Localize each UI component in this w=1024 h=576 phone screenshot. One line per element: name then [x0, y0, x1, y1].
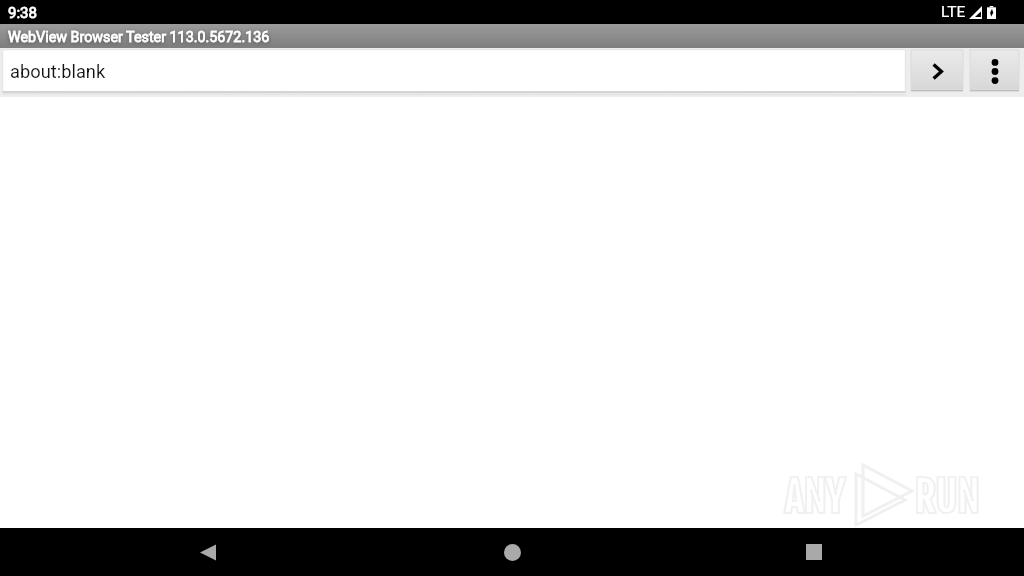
staticText: about:blank — [10, 61, 106, 82]
button[interactable]: Back — [184, 528, 232, 576]
button[interactable]: Home — [488, 528, 536, 576]
staticText: RUN — [914, 472, 979, 524]
button[interactable]: about:blank — [3, 49, 905, 92]
button[interactable]: More options — [970, 50, 1019, 92]
staticText: ANY — [784, 472, 845, 524]
button[interactable]: Recent apps — [790, 528, 838, 576]
staticText: WebView Browser Tester 113.0.5672.136 — [8, 29, 270, 46]
staticText: LTE — [941, 3, 966, 21]
staticText: 9:38 — [8, 4, 37, 22]
button[interactable]: Go — [911, 50, 963, 92]
